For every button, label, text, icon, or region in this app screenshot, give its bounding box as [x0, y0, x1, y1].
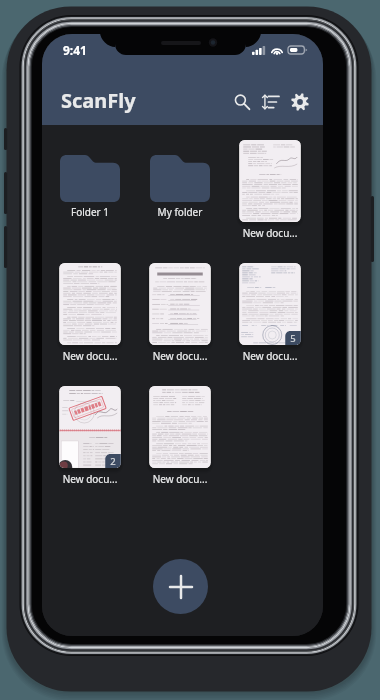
button[interactable]: New docu...: [226, 137, 314, 247]
button[interactable]: New docu...: [136, 260, 224, 370]
button[interactable]: New docu...: [46, 260, 134, 370]
button[interactable]: 5: [226, 260, 314, 370]
staticText: New docu...: [136, 472, 224, 486]
button[interactable]: New docu...: [136, 383, 224, 493]
staticText: My folder: [136, 205, 224, 219]
staticText: 9:41: [63, 42, 87, 58]
button[interactable]: Search: [227, 87, 256, 116]
staticText: 5: [290, 332, 296, 345]
staticText: New docu...: [226, 226, 314, 240]
button[interactable]: Folder 1: [46, 137, 134, 247]
button[interactable]: Settings: [285, 87, 314, 116]
staticText: New docu...: [136, 349, 224, 363]
staticText: New docu...: [226, 349, 314, 363]
staticText: Folder 1: [46, 205, 134, 219]
staticText: ScanFly: [61, 87, 136, 114]
button[interactable]: Sort: [256, 87, 285, 116]
staticText: New docu...: [46, 349, 134, 363]
button: 9:41: [42, 34, 323, 125]
staticText: New docu...: [46, 472, 134, 486]
button[interactable]: Add new scan: [153, 559, 208, 614]
staticText: 2: [110, 455, 116, 468]
button[interactable]: 2: [46, 383, 134, 493]
button[interactable]: My folder: [136, 137, 224, 247]
